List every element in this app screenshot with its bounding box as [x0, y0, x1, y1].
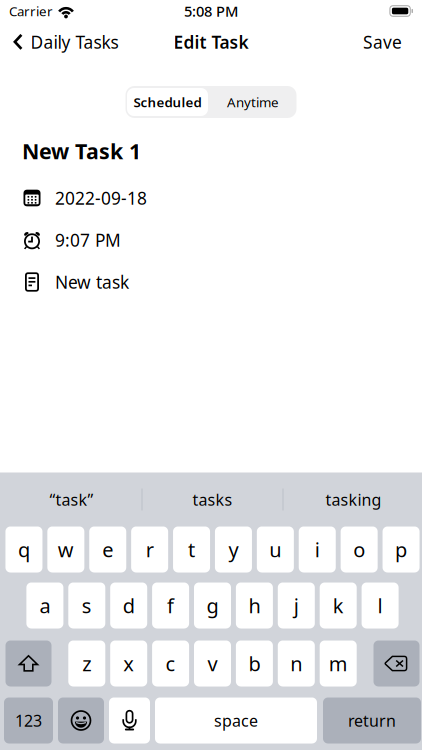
button[interactable]: Dictation [109, 697, 150, 743]
button[interactable]: c [152, 640, 189, 686]
staticText: y [228, 536, 238, 563]
staticText: i [315, 536, 320, 563]
button[interactable]: return [323, 697, 421, 743]
staticText: 2022-09-18 [55, 186, 147, 209]
staticText: Anytime [227, 93, 279, 111]
button[interactable]: 9:07 PM [0, 219, 422, 261]
button[interactable]: k [320, 582, 357, 628]
button[interactable]: Anytime [209, 86, 296, 118]
staticText: 5:08 PM [184, 1, 238, 21]
staticText: 9:07 PM [55, 228, 121, 251]
staticText: u [269, 536, 281, 563]
button[interactable]: 123 [4, 697, 53, 743]
button[interactable]: Delete [373, 640, 419, 686]
button[interactable]: b [236, 640, 273, 686]
staticText: Save [363, 30, 402, 53]
button[interactable]: m [320, 640, 357, 686]
staticText: l [378, 592, 383, 619]
staticText: tasks [192, 489, 232, 510]
button[interactable]: y [215, 526, 252, 572]
staticText: Edit Task [173, 30, 248, 53]
button[interactable]: e [89, 526, 126, 572]
staticText: t [188, 536, 195, 563]
staticText: r [146, 536, 154, 563]
staticText: d [123, 592, 135, 619]
button[interactable]: f [152, 582, 189, 628]
button[interactable]: Scheduled [125, 86, 209, 118]
staticText: q [18, 536, 30, 563]
staticText: s [82, 592, 92, 619]
button[interactable]: d [110, 582, 147, 628]
button[interactable]: q [5, 526, 42, 572]
staticText: b [248, 650, 260, 677]
button[interactable]: space [155, 697, 317, 743]
button[interactable]: Daily Tasks [0, 22, 128, 62]
button[interactable]: z [68, 640, 105, 686]
button[interactable]: Emoji [58, 697, 104, 743]
button[interactable]: i [299, 526, 336, 572]
staticText: o [353, 536, 365, 563]
button[interactable]: tasks [142, 477, 282, 521]
button[interactable]: n [278, 640, 315, 686]
button[interactable]: w [47, 526, 84, 572]
staticText: space [214, 710, 258, 731]
staticText: n [290, 650, 302, 677]
staticText: Daily Tasks [30, 30, 118, 53]
button[interactable]: o [341, 526, 378, 572]
staticText: x [123, 650, 134, 677]
button[interactable]: j [278, 582, 315, 628]
button[interactable]: 2022-09-18 [0, 177, 422, 219]
staticText: p [395, 536, 407, 563]
staticText: 123 [15, 710, 42, 731]
staticText: z [82, 650, 91, 677]
button[interactable]: v [194, 640, 231, 686]
button[interactable]: x [110, 640, 147, 686]
staticText: Carrier [9, 2, 53, 20]
button[interactable]: Shift [5, 640, 51, 686]
button[interactable]: New task [0, 261, 422, 303]
button[interactable]: Save [363, 22, 422, 62]
staticText: w [58, 536, 74, 563]
staticText: a [39, 592, 50, 619]
staticText: f [167, 592, 174, 619]
button[interactable]: a [26, 582, 63, 628]
staticText: return [348, 710, 396, 731]
button[interactable]: h [236, 582, 273, 628]
staticText: k [333, 592, 344, 619]
button[interactable]: tasking [283, 477, 422, 521]
staticText: New task [55, 270, 129, 293]
staticText: v [207, 650, 217, 677]
button[interactable]: t [173, 526, 210, 572]
staticText: g [206, 592, 218, 619]
staticText: m [329, 650, 348, 677]
button[interactable]: p [382, 526, 419, 572]
button[interactable]: r [131, 526, 168, 572]
staticText: h [248, 592, 260, 619]
button[interactable]: “task” [1, 477, 141, 521]
button[interactable]: u [257, 526, 294, 572]
staticText: e [102, 536, 113, 563]
staticText: “task” [49, 489, 93, 510]
button[interactable]: s [68, 582, 105, 628]
staticText: New Task 1 [22, 137, 141, 165]
staticText: j [294, 592, 299, 619]
staticText: Scheduled [133, 93, 201, 111]
button[interactable]: g [194, 582, 231, 628]
staticText: tasking [325, 489, 381, 510]
button[interactable]: l [362, 582, 399, 628]
staticText: c [166, 650, 176, 677]
